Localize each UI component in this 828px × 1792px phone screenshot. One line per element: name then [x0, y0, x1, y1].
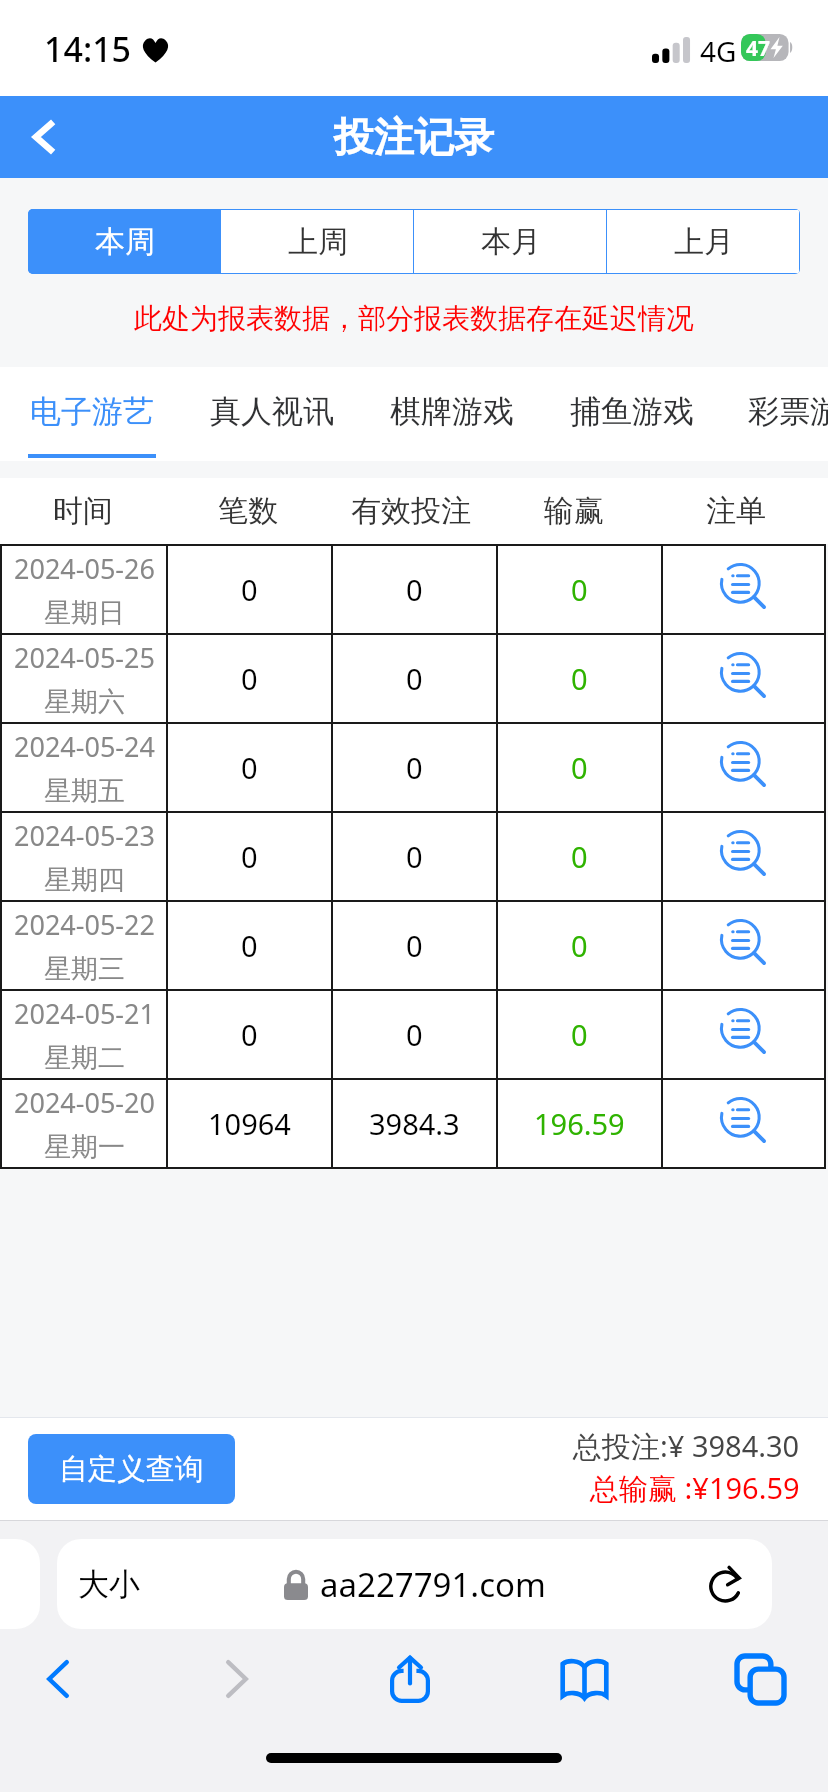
staticText: 星期六	[44, 685, 125, 719]
staticText: 本周	[95, 223, 155, 261]
button[interactable]: 大小	[57, 1539, 772, 1629]
staticText: 0	[571, 837, 588, 876]
button[interactable]: 上周	[221, 209, 414, 274]
staticText: 0	[406, 659, 423, 698]
staticText: 投注记录	[334, 112, 494, 162]
staticText: 0	[241, 926, 258, 965]
staticText: 本月	[481, 223, 541, 261]
staticText: 上周	[288, 223, 348, 261]
staticText: 0	[571, 570, 588, 609]
button[interactable]: 查看注单	[663, 724, 824, 811]
staticText: 0	[406, 1015, 423, 1054]
staticText: 星期日	[44, 596, 125, 630]
staticText: 彩票游戏	[748, 392, 828, 431]
button[interactable]: 捕鱼游戏	[568, 367, 696, 461]
staticText: 输赢	[544, 492, 604, 530]
button[interactable]: 本周	[28, 209, 221, 274]
staticText: aa227791.com	[320, 1562, 546, 1607]
staticText: 2024-05-21	[14, 995, 155, 1032]
staticText: 捕鱼游戏	[570, 392, 694, 431]
staticText: 电子游艺	[30, 392, 154, 431]
staticText: 时间	[53, 492, 113, 530]
button[interactable]: Share	[364, 1632, 456, 1724]
button[interactable]: 彩票游戏	[748, 367, 828, 461]
staticText: 196.59	[534, 1104, 625, 1143]
button[interactable]: Tabs	[714, 1633, 806, 1725]
staticText: 0	[241, 748, 258, 787]
button[interactable]: Bookmarks	[538, 1633, 630, 1725]
button[interactable]: 查看注单	[663, 902, 824, 989]
staticText: 总输赢 :¥196.59	[590, 1468, 800, 1508]
staticText: 2024-05-25	[14, 639, 155, 676]
staticText: 0	[406, 926, 423, 965]
staticText: 此处为报表数据，部分报表数据存在延迟情况	[0, 301, 828, 336]
staticText: 星期二	[44, 1041, 125, 1075]
staticText: 0	[571, 926, 588, 965]
staticText: 0	[241, 837, 258, 876]
staticText: 注单	[706, 492, 766, 530]
staticText: 笔数	[218, 492, 278, 530]
button[interactable]: 查看注单	[663, 991, 824, 1078]
staticText: 大小	[78, 1565, 140, 1604]
staticText: 2024-05-24	[14, 728, 155, 765]
staticText: 0	[241, 1015, 258, 1054]
staticText: 2024-05-22	[14, 906, 155, 943]
button[interactable]: 电子游艺	[28, 367, 156, 461]
staticText: 47	[746, 34, 771, 61]
staticText: 2024-05-26	[14, 550, 155, 587]
button[interactable]: 上月	[607, 209, 800, 274]
staticText: 4G	[700, 32, 737, 70]
staticText: 上月	[674, 223, 734, 261]
button[interactable]: Back	[12, 1633, 104, 1725]
staticText: 0	[571, 748, 588, 787]
staticText: 2024-05-23	[14, 817, 155, 854]
staticText: 自定义查询	[59, 1451, 204, 1488]
button[interactable]: 查看注单	[663, 1080, 824, 1167]
staticText: 10964	[208, 1104, 291, 1143]
staticText: 0	[406, 570, 423, 609]
staticText: 有效投注	[351, 492, 471, 530]
button[interactable]: Forward	[191, 1633, 283, 1725]
staticText: 星期四	[44, 863, 125, 897]
staticText: 0	[406, 748, 423, 787]
staticText: 2024-05-20	[14, 1084, 155, 1121]
button[interactable]: 本月	[414, 209, 607, 274]
staticText: 星期三	[44, 952, 125, 986]
staticText: 3984.3	[369, 1104, 460, 1143]
staticText: 总投注:¥ 3984.30	[573, 1426, 800, 1466]
staticText: 0	[571, 1015, 588, 1054]
button[interactable]: 查看注单	[663, 546, 824, 633]
staticText: 0	[241, 570, 258, 609]
staticText: 星期一	[44, 1130, 125, 1164]
staticText: 0	[571, 659, 588, 698]
button[interactable]: 自定义查询	[28, 1434, 235, 1504]
staticText: 棋牌游戏	[390, 392, 514, 431]
button[interactable]: 棋牌游戏	[388, 367, 516, 461]
staticText: 0	[241, 659, 258, 698]
button[interactable]: 真人视讯	[208, 367, 336, 461]
staticText: 星期五	[44, 774, 125, 808]
staticText: 0	[406, 837, 423, 876]
staticText: 14:15	[44, 26, 132, 72]
button[interactable]: 查看注单	[663, 813, 824, 900]
button[interactable]: 查看注单	[663, 635, 824, 722]
staticText: 真人视讯	[210, 392, 334, 431]
button[interactable]: Back	[0, 96, 86, 178]
